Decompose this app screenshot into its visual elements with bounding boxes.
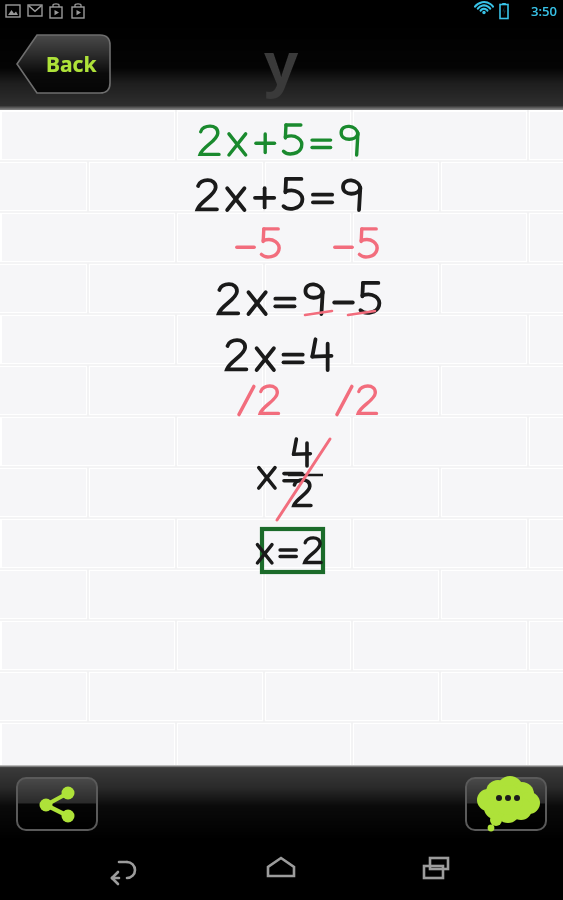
button[interactable]: Home	[250, 840, 314, 900]
button[interactable]: Comments	[466, 778, 546, 830]
staticText: Back	[46, 50, 97, 79]
staticText: 3:50	[531, 2, 557, 20]
staticText: y	[264, 21, 299, 103]
button[interactable]: Back	[93, 840, 157, 900]
button[interactable]: Recent apps	[406, 840, 470, 900]
button[interactable]: Back	[17, 35, 110, 93]
button[interactable]: Share	[17, 778, 97, 830]
